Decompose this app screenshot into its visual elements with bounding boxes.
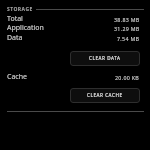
staticText: 31.29 MB [114, 25, 140, 32]
staticText: Data [7, 33, 23, 43]
staticText: 7.54 MB [117, 35, 140, 42]
staticText: 38.83 MB [114, 16, 140, 23]
staticText: Application [7, 23, 44, 33]
staticText: CLEAR DATA [89, 55, 121, 61]
staticText: 20.00 KB [115, 74, 140, 81]
staticText: STORAGE [7, 6, 33, 13]
staticText: Cache [7, 72, 27, 82]
staticText: Total [7, 14, 23, 24]
staticText: CLEAR CACHE [87, 92, 123, 98]
button[interactable]: CLEAR DATA [70, 51, 140, 66]
button[interactable]: CLEAR CACHE [70, 88, 140, 103]
